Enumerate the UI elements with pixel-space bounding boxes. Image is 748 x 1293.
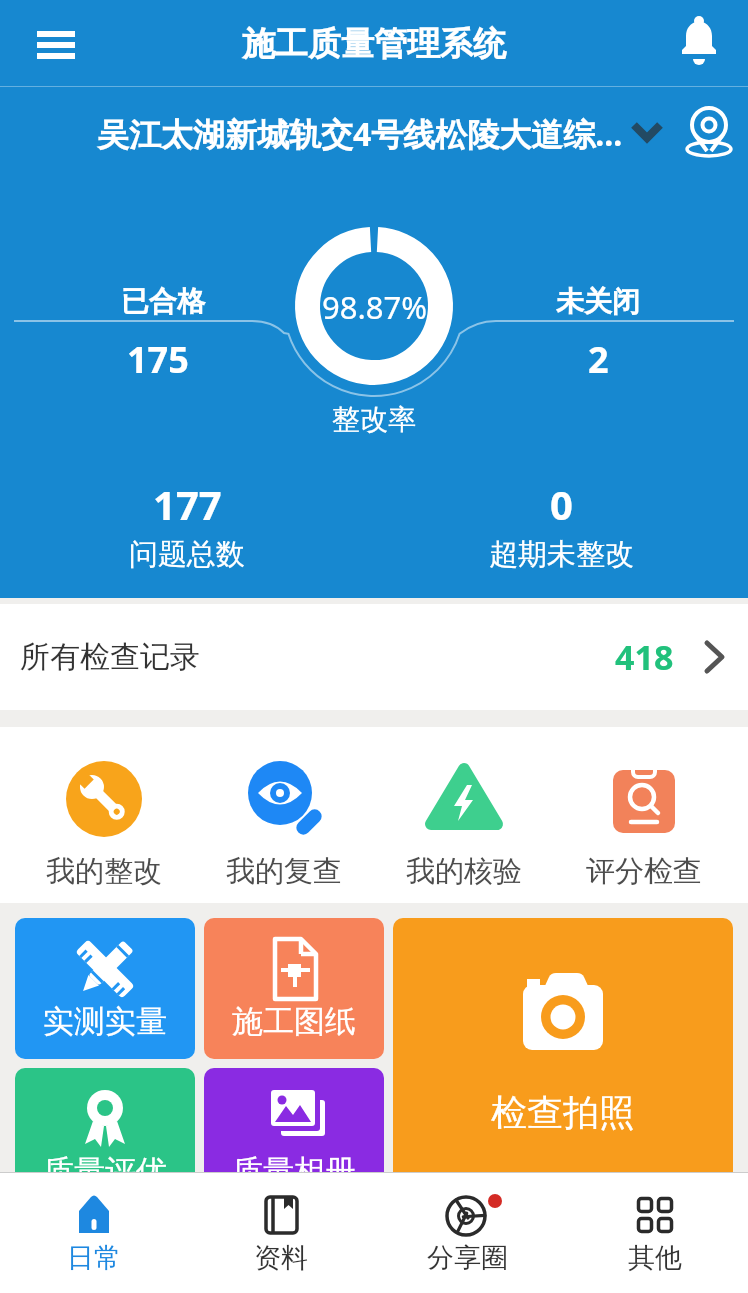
staticText: 日常 [67, 1241, 121, 1275]
staticText: 资料 [254, 1241, 308, 1275]
button[interactable]: 资料 [187, 1173, 374, 1293]
button[interactable]: 评分检查 [554, 727, 734, 903]
staticText: 175 [127, 335, 189, 379]
staticText: 418 [615, 634, 674, 680]
staticText: 评分检查 [586, 853, 702, 890]
button[interactable] [676, 19, 722, 69]
button[interactable]: 实测实量 [15, 918, 195, 1059]
button[interactable]: 质量评优 [15, 1068, 195, 1209]
button[interactable]: 日常 [0, 1173, 187, 1293]
staticText: 0 [550, 477, 573, 529]
button[interactable]: 我的整改 [14, 727, 194, 903]
staticText: 其他 [628, 1241, 682, 1275]
button[interactable]: 其他 [561, 1173, 748, 1293]
staticText: 施工质量管理系统 [242, 23, 506, 65]
staticText: 我的整改 [46, 853, 162, 890]
staticText: 检查拍照 [491, 1090, 635, 1135]
button[interactable] [26, 19, 86, 69]
button[interactable]: 我的核验 [374, 727, 554, 903]
staticText: 施工图纸 [232, 1002, 356, 1041]
staticText: 超期未整改 [489, 536, 634, 573]
staticText: 我的复查 [226, 853, 342, 890]
staticText: 2 [588, 335, 609, 379]
button[interactable]: 检查拍照 [393, 918, 733, 1209]
staticText: 整改率 [332, 402, 416, 437]
staticText: 质量评优 [43, 1152, 167, 1191]
button[interactable]: 施工图纸 [204, 918, 384, 1059]
staticText: 质量相册 [232, 1152, 356, 1191]
staticText: 已合格 [121, 284, 205, 319]
staticText: 分享圈 [427, 1241, 508, 1275]
staticText: 未关闭 [556, 284, 640, 319]
button[interactable]: 分享圈 [374, 1173, 561, 1293]
staticText: 我的核验 [406, 853, 522, 890]
button[interactable]: 所有检查记录 [0, 604, 748, 710]
staticText: 所有检查记录 [20, 638, 200, 676]
staticText: 实测实量 [43, 1002, 167, 1041]
button[interactable]: 吴江太湖新城轨交4号线松陵大道综... [0, 87, 748, 180]
staticText: 177 [153, 477, 222, 529]
staticText: 98.87% [322, 286, 427, 328]
staticText: 问题总数 [129, 536, 245, 573]
button[interactable]: 我的复查 [194, 727, 374, 903]
staticText: 吴江太湖新城轨交4号线松陵大道综... [97, 112, 623, 156]
button[interactable]: 质量相册 [204, 1068, 384, 1209]
